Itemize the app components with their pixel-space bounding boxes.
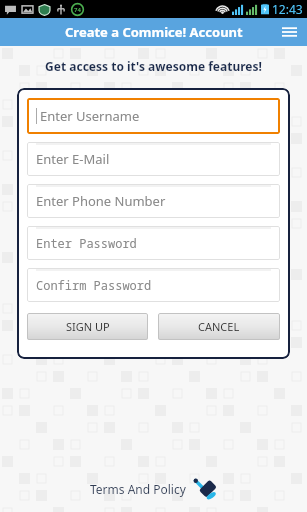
staticText: Enter Password	[36, 235, 137, 251]
staticText: Get access to it's awesome features!	[0, 58, 307, 74]
staticText: 12:43	[272, 1, 303, 17]
button[interactable]: SIGN UP	[27, 313, 148, 340]
button[interactable]: Menu	[277, 20, 301, 44]
staticText: 74	[74, 6, 81, 14]
other: Terms and Policy	[192, 476, 218, 502]
staticText: Create a Commice! Account	[65, 23, 243, 41]
button[interactable]: Terms And Policy	[90, 476, 218, 502]
button[interactable]: Enter E-Mail	[27, 142, 280, 176]
staticText: Terms And Policy	[90, 481, 186, 497]
staticText: CANCEL	[198, 319, 240, 334]
button[interactable]: Confirm Password	[27, 268, 280, 302]
staticText: Enter E-Mail	[36, 150, 110, 168]
staticText: Enter Phone Number	[36, 192, 166, 210]
staticText: Enter Username	[40, 107, 140, 125]
button[interactable]: Enter Username	[27, 98, 280, 134]
staticText: Confirm Password	[36, 277, 152, 293]
button[interactable]: CANCEL	[158, 313, 280, 340]
button[interactable]: Enter Password	[27, 226, 280, 260]
staticText: SIGN UP	[66, 319, 110, 334]
button[interactable]: Enter Phone Number	[27, 184, 280, 218]
